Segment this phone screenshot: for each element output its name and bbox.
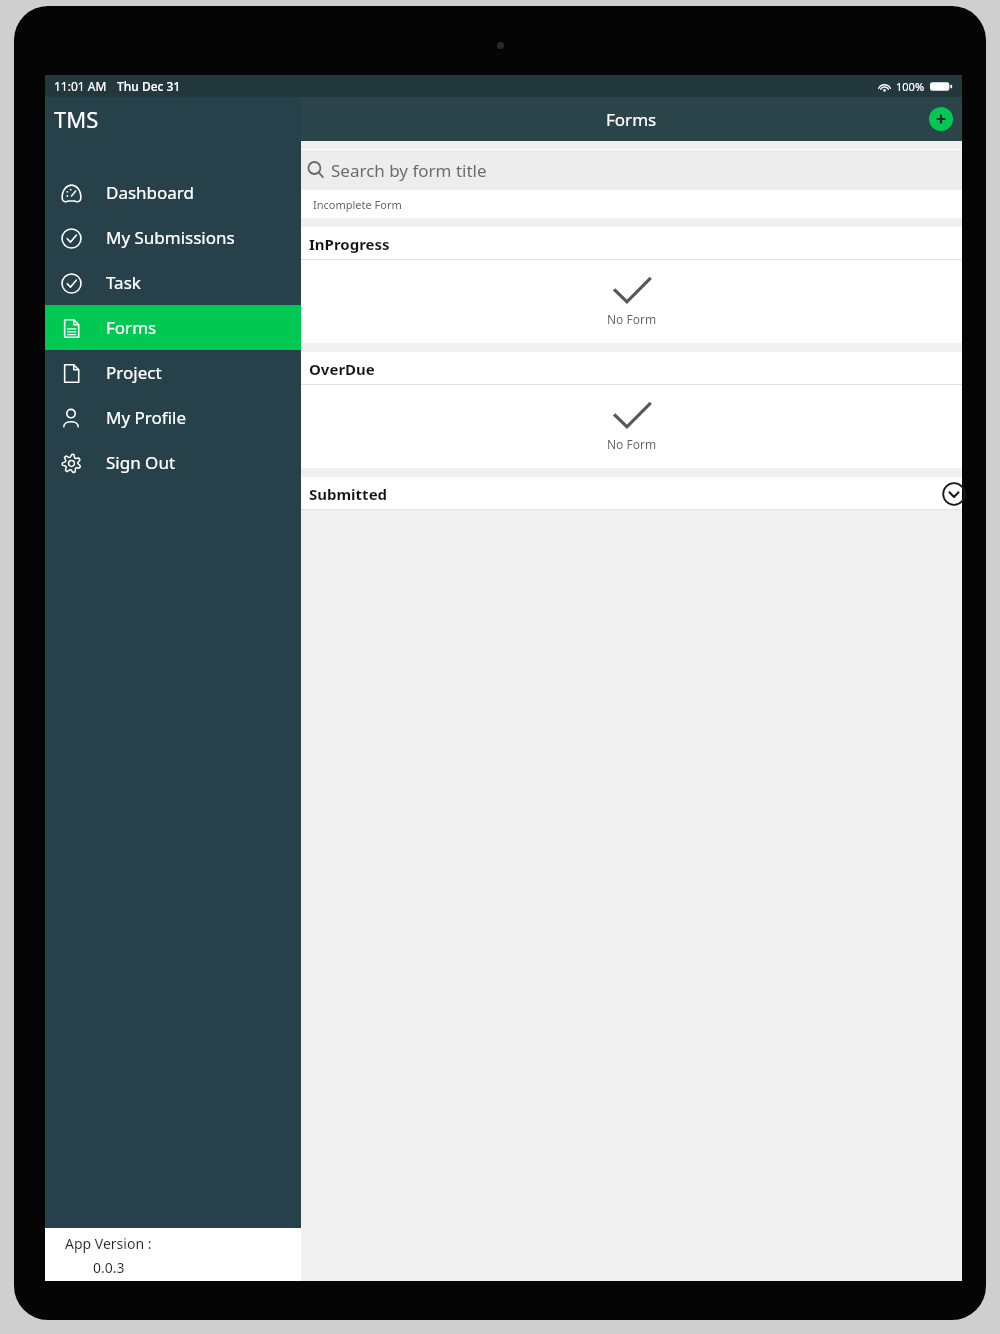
button[interactable]: Task — [45, 260, 301, 305]
button[interactable]: Incomplete Form — [301, 191, 962, 218]
staticText: OverDue — [309, 359, 375, 379]
button[interactable]: My Submissions — [45, 215, 301, 260]
staticText: Sign Out — [106, 451, 176, 474]
staticText: Thu Dec 31 — [117, 78, 181, 94]
staticText: 0.0.3 — [93, 1258, 125, 1277]
staticText: Incomplete Form — [313, 197, 402, 212]
staticText: My Submissions — [106, 226, 235, 249]
button[interactable]: Search by form title — [301, 150, 962, 190]
staticText: TMS — [54, 104, 99, 134]
button[interactable]: InProgress — [301, 227, 962, 260]
staticText: 11:01 AM — [54, 78, 107, 94]
button[interactable]: Sign Out — [45, 440, 301, 485]
staticText: Task — [106, 271, 141, 294]
staticText: Submitted — [309, 484, 388, 504]
other: Expand Submitted — [941, 481, 967, 507]
button[interactable]: App Version : — [45, 1228, 301, 1281]
button[interactable]: My Profile — [45, 395, 301, 440]
staticText: No Form — [607, 311, 657, 327]
staticText: InProgress — [309, 234, 390, 254]
staticText: Forms — [106, 316, 157, 339]
button[interactable]: Project — [45, 350, 301, 395]
staticText: 100% — [896, 79, 925, 94]
staticText: No Form — [607, 436, 657, 452]
staticText: Dashboard — [106, 181, 195, 204]
staticText: My Profile — [106, 406, 186, 429]
staticText: App Version : — [65, 1234, 152, 1253]
button[interactable]: Forms — [45, 305, 301, 350]
button[interactable]: Dashboard — [45, 170, 301, 215]
staticText: Forms — [606, 108, 657, 131]
button[interactable]: OverDue — [301, 352, 962, 385]
button[interactable]: Add form — [929, 107, 953, 131]
staticText: Search by form title — [331, 159, 487, 182]
button[interactable]: Submitted — [301, 477, 962, 510]
staticText: Project — [106, 361, 162, 384]
